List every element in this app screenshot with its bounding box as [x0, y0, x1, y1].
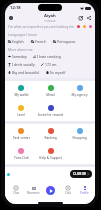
- staticText: Big and beautiful: [12, 70, 40, 75]
- staticText: Profile: [80, 191, 89, 195]
- staticText: My wallet: [14, 93, 29, 97]
- button[interactable]: Task center: [6, 124, 36, 140]
- staticText: I hate smoking: [37, 54, 61, 59]
- staticText: My agency: [71, 93, 88, 97]
- staticText: Moments: [27, 191, 40, 195]
- button[interactable]: CLUB 88: [70, 170, 92, 178]
- staticText: Portuguese: [57, 39, 76, 44]
- staticText: French: [35, 39, 46, 44]
- staticText: Invite for reward: [38, 113, 63, 117]
- button[interactable]: English: [8, 39, 24, 44]
- staticText: English: [12, 39, 24, 44]
- staticText: Languages I know: [8, 32, 37, 37]
- staticText: I'm what an imperfect you are looking fo…: [8, 24, 74, 29]
- button[interactable]: Edit profile: [77, 14, 85, 22]
- staticText: Aiyah: [44, 13, 56, 19]
- staticText: 119345: [44, 19, 56, 22]
- staticText: Its myself: [50, 70, 66, 75]
- staticText: Someday: [12, 54, 27, 59]
- staticText: More about me: [8, 47, 33, 52]
- button[interactable]: Invite for reward: [36, 101, 65, 117]
- button[interactable]: Ranking: [36, 124, 65, 140]
- button[interactable]: I drink socially: [8, 62, 35, 67]
- button[interactable]: Share profile: [85, 14, 93, 22]
- button[interactable]: Fans Club: [6, 144, 36, 160]
- button[interactable]: Someday: [8, 54, 27, 59]
- staticText: Task center: [13, 136, 30, 140]
- button[interactable]: Profile: [76, 186, 93, 195]
- button[interactable]: Level: [6, 101, 36, 117]
- button[interactable]: My agency: [65, 81, 94, 97]
- staticText: Shopping: [72, 136, 87, 140]
- staticText: 172 cm: [45, 62, 57, 67]
- button[interactable]: Help & Support: [36, 144, 65, 160]
- staticText: I drink socially: [12, 62, 35, 67]
- staticText: CLUB 88: [73, 172, 86, 176]
- button[interactable]: Big and beautiful: [8, 70, 40, 75]
- button[interactable]: Go live: [46, 186, 55, 195]
- staticText: Help & Support: [39, 156, 62, 160]
- staticText: Club: [65, 191, 71, 195]
- button[interactable]: Chat: [7, 186, 25, 195]
- button[interactable]: Club: [59, 186, 76, 195]
- staticText: 12:18: [10, 5, 21, 11]
- button[interactable]: Its myself: [46, 70, 66, 75]
- button[interactable]: Settings: [7, 14, 15, 22]
- staticText: Metal: [46, 93, 55, 97]
- button[interactable]: French: [31, 39, 46, 44]
- button[interactable]: I hate smoking: [33, 54, 61, 59]
- button[interactable]: My wallet: [6, 81, 36, 97]
- button[interactable]: Moments: [25, 186, 42, 195]
- button[interactable]: Portuguese: [53, 39, 76, 44]
- staticText: Fans Club: [14, 156, 29, 160]
- staticText: Chat: [13, 191, 20, 195]
- button[interactable]: Shopping: [65, 124, 94, 140]
- staticText: Ranking: [44, 136, 57, 140]
- button[interactable]: Metal: [36, 81, 65, 97]
- staticText: Level: [17, 113, 25, 117]
- button[interactable]: 172 cm: [41, 62, 57, 67]
- button[interactable]: Badge: [6, 172, 10, 176]
